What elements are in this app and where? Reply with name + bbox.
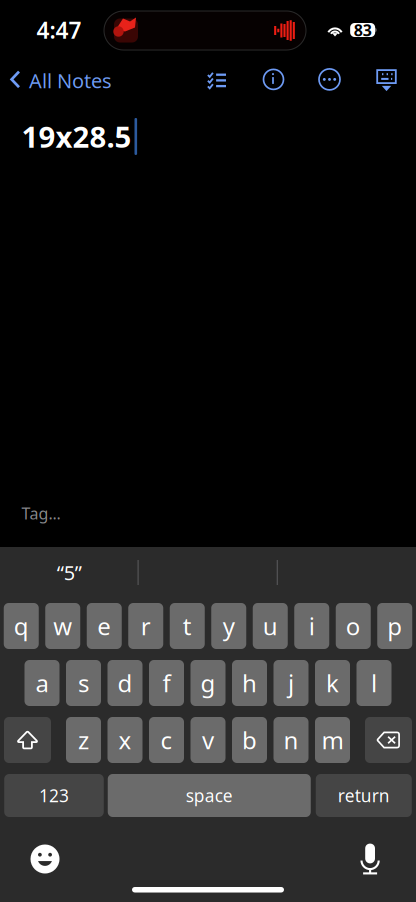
button[interactable]: Delete [365,717,412,763]
staticText: 19x28.5 [21,117,131,156]
staticText: Tag... [21,503,60,524]
button[interactable]: y [211,603,246,649]
staticText: u [263,610,278,642]
button[interactable]: x [107,717,142,763]
staticText: f [162,667,170,699]
staticText: space [186,784,233,807]
staticText: t [183,610,192,642]
staticText: m [321,724,343,756]
button[interactable]: s [66,660,101,706]
staticText: e [97,610,111,642]
button[interactable]: g [190,660,225,706]
button[interactable]: t [170,603,205,649]
staticText: return [338,784,390,807]
staticText: 83 [354,19,372,41]
button[interactable]: e [87,603,122,649]
staticText: All Notes [29,67,112,94]
staticText: “5” [57,559,82,586]
button[interactable]: j [273,660,308,706]
button[interactable]: k [315,660,350,706]
staticText: p [387,610,402,642]
staticText: i [309,610,315,642]
button[interactable]: Info [253,59,293,99]
button[interactable]: r [128,603,163,649]
button[interactable]: space [108,774,311,817]
button[interactable]: a [24,660,59,706]
staticText: w [53,610,72,642]
button[interactable]: More [309,59,349,99]
button[interactable]: All Notes [0,59,112,100]
button[interactable]: “5” [0,549,139,595]
staticText: 4:47 [36,15,81,45]
button[interactable]: p [377,603,412,649]
button[interactable]: f [149,660,184,706]
button[interactable]: u [253,603,288,649]
staticText: c [160,724,172,756]
button[interactable]: Dictate [348,839,392,879]
staticText: g [200,667,215,699]
staticText: j [288,667,294,699]
staticText: v [202,724,214,756]
staticText: r [141,610,151,642]
staticText: d [117,667,132,699]
staticText: k [326,667,339,699]
staticText: 123 [39,784,69,807]
button[interactable]: return [316,774,412,817]
staticText: l [371,667,377,699]
button[interactable]: h [232,660,267,706]
staticText: y [223,610,235,642]
staticText: q [14,610,29,642]
button[interactable]: 123 [4,774,104,817]
staticText: x [118,724,131,756]
staticText: n [283,724,298,756]
button[interactable]: Shift [4,717,51,763]
staticText: s [78,667,89,699]
staticText: z [78,724,89,756]
button[interactable]: Checklist [196,59,236,99]
button[interactable]: Emoji [23,839,67,879]
button[interactable]: d [107,660,142,706]
staticText: o [346,610,361,642]
staticText: h [242,667,257,699]
button[interactable]: w [45,603,80,649]
staticText: a [35,667,48,699]
button[interactable]: v [190,717,225,763]
button[interactable]: q [4,603,39,649]
button[interactable]: z [66,717,101,763]
button[interactable]: Hide Keyboard [366,60,406,100]
button[interactable]: l [356,660,391,706]
staticText: b [242,724,257,756]
button[interactable]: i [294,603,329,649]
button[interactable]: c [149,717,184,763]
button[interactable]: b [232,717,267,763]
button[interactable]: o [336,603,371,649]
button[interactable]: m [315,717,350,763]
button[interactable]: n [273,717,308,763]
